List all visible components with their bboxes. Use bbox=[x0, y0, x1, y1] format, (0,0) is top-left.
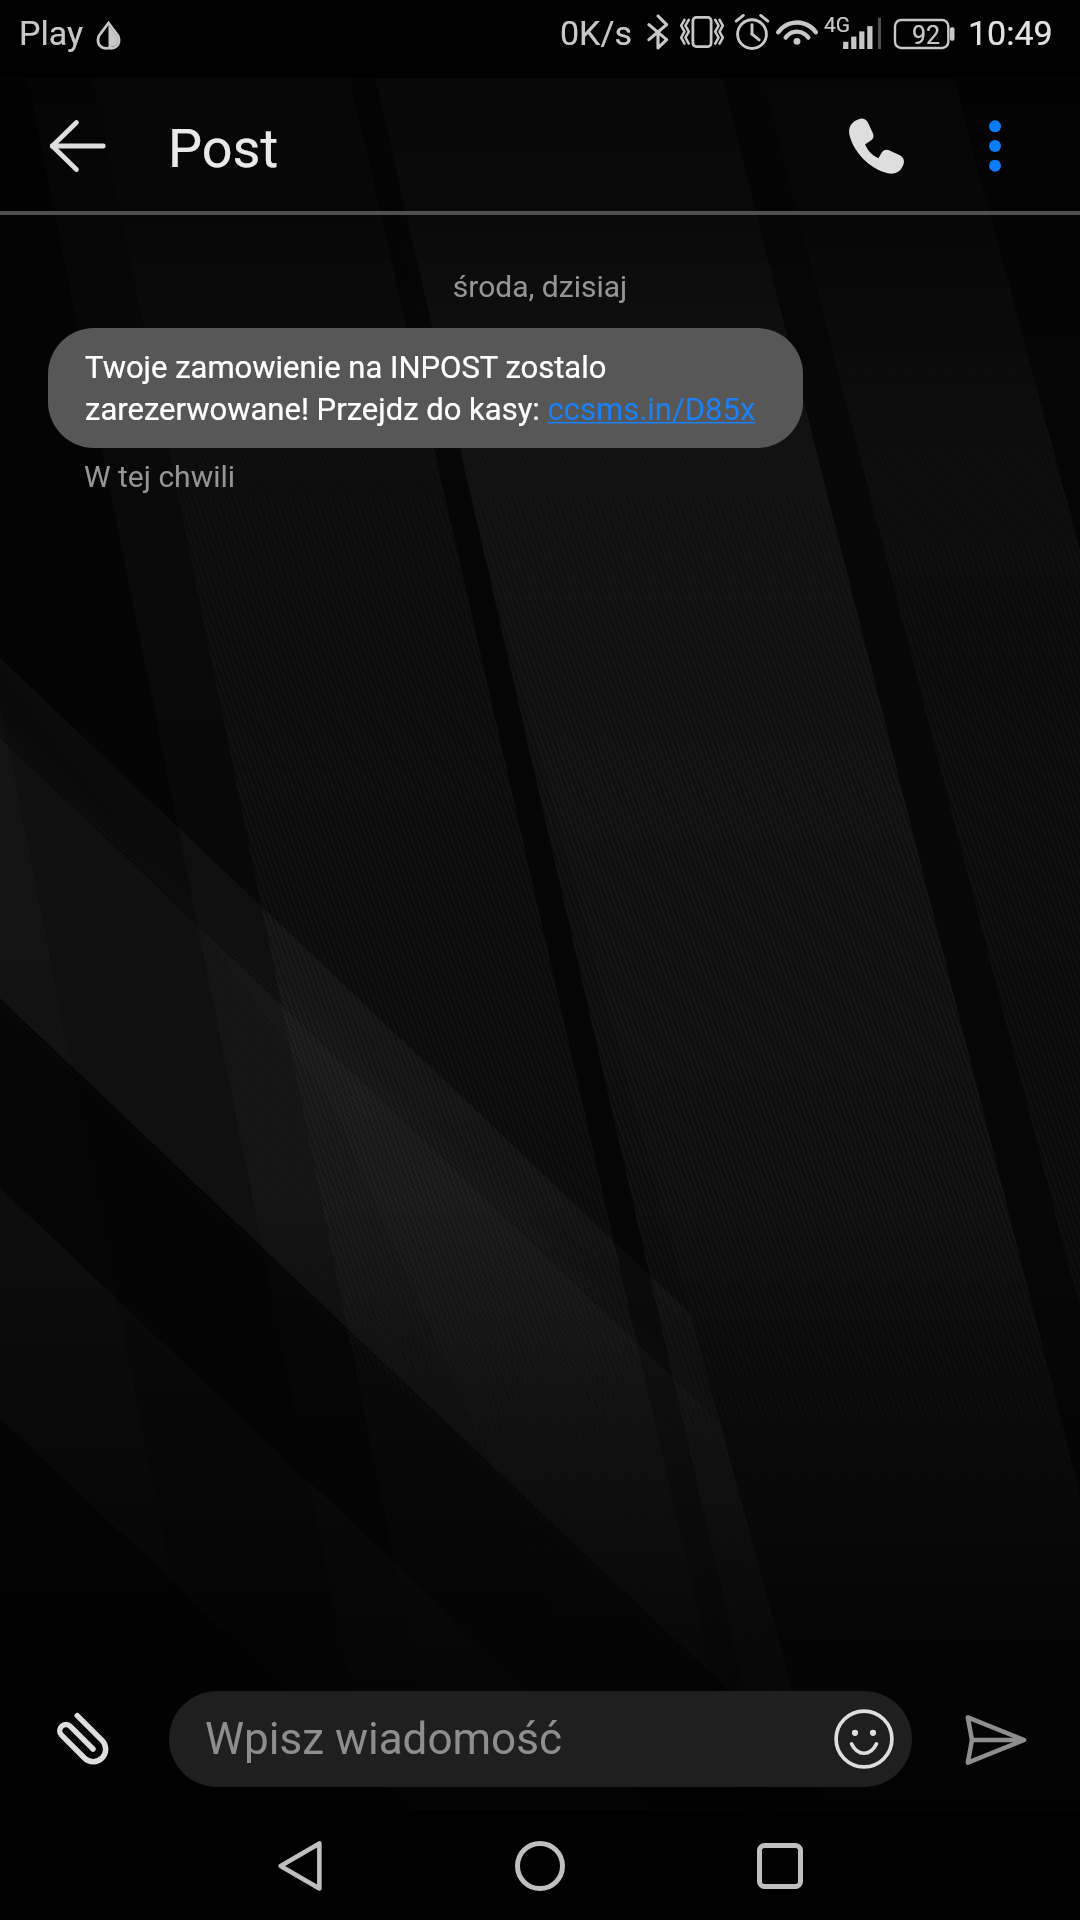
button[interactable]: Back bbox=[255, 1821, 345, 1911]
button[interactable]: Call bbox=[828, 99, 922, 193]
staticText: Play bbox=[19, 13, 84, 53]
button[interactable]: Attach bbox=[30, 1686, 138, 1794]
button[interactable]: Twoje zamowienie na INPOST zostalo zarez… bbox=[48, 328, 803, 448]
button[interactable]: More options bbox=[948, 99, 1042, 193]
staticText: 4G bbox=[824, 13, 851, 38]
staticText: Twoje zamowienie na INPOST zostalo zarez… bbox=[85, 349, 775, 428]
button[interactable]: Emoji bbox=[828, 1703, 900, 1775]
staticText: Wpisz wiadomość bbox=[205, 1713, 562, 1765]
button[interactable]: Send bbox=[942, 1686, 1050, 1794]
staticText: W tej chwili bbox=[84, 459, 236, 494]
staticText: Post bbox=[168, 117, 279, 180]
staticText: 0K/s bbox=[560, 13, 633, 53]
staticText: środa, dzisiaj bbox=[0, 269, 1080, 304]
button[interactable]: Back bbox=[42, 111, 112, 181]
button[interactable]: Recents bbox=[735, 1821, 825, 1911]
staticText: 92 bbox=[905, 21, 947, 50]
staticText: 10:49 bbox=[968, 13, 1053, 53]
button[interactable]: Wpisz wiadomość bbox=[169, 1691, 912, 1787]
button[interactable]: Home bbox=[495, 1821, 585, 1911]
